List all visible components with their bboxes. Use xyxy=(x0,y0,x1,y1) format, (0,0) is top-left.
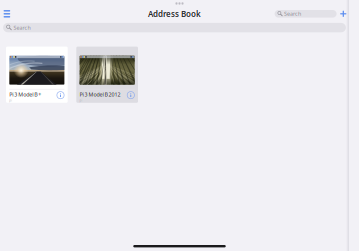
button[interactable]: Show sidebar xyxy=(0,5,16,23)
staticText: pi xyxy=(9,99,12,102)
staticText: pi xyxy=(80,99,83,102)
staticText: Address Book xyxy=(148,8,201,19)
staticText: Search xyxy=(13,24,30,31)
button[interactable]: Search xyxy=(3,23,346,32)
staticText: Search xyxy=(284,10,301,17)
button[interactable]: Pi 3 Model B 2012 xyxy=(76,47,138,103)
staticText: Pi 3 Model B + xyxy=(9,91,41,98)
button[interactable]: Add xyxy=(337,6,349,21)
staticText: Pi 3 Model B 2012 xyxy=(80,91,121,98)
button[interactable]: Pi 3 Model B + xyxy=(6,47,68,103)
button[interactable]: Search xyxy=(275,10,337,18)
